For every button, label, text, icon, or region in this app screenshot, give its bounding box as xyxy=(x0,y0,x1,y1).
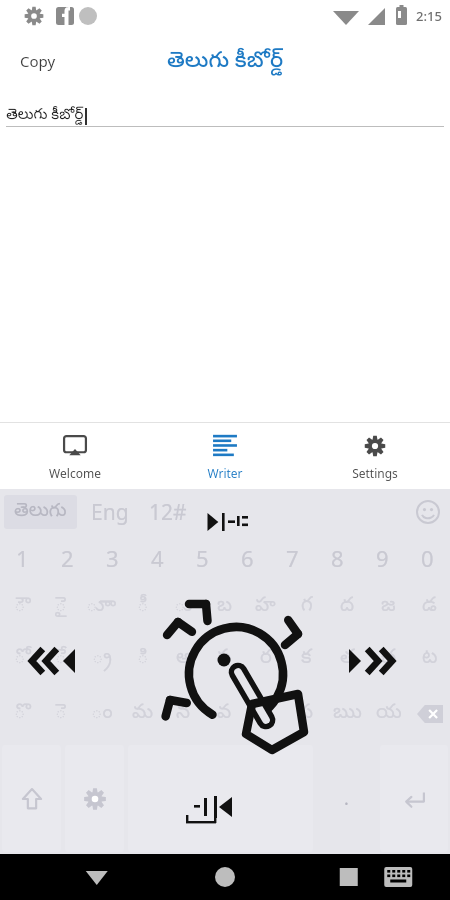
staticText: తెలుగు కీబోర్డ్ xyxy=(167,43,284,77)
button[interactable]: బ xyxy=(204,581,245,633)
button[interactable]: 12# xyxy=(143,494,193,531)
button[interactable]: చ xyxy=(368,633,409,685)
staticText: 0 xyxy=(421,543,434,573)
button[interactable]: ర xyxy=(245,633,286,685)
staticText: గ xyxy=(301,594,313,621)
button[interactable]: వ xyxy=(204,685,245,743)
button[interactable]: ూా xyxy=(81,581,122,633)
button[interactable]: 3 xyxy=(90,535,135,581)
button[interactable]: ట xyxy=(409,633,450,685)
button[interactable]: ో xyxy=(0,633,40,685)
staticText: ు xyxy=(174,594,193,621)
staticText: ఋ xyxy=(333,701,362,728)
button[interactable]: Space xyxy=(128,745,313,852)
button[interactable]: Emoji xyxy=(406,490,450,534)
staticText: చ xyxy=(381,646,397,673)
button[interactable]: 8 xyxy=(315,535,360,581)
button[interactable]: Welcome xyxy=(0,423,150,489)
button[interactable]: Copy xyxy=(8,43,68,79)
button[interactable]: 7 xyxy=(270,535,315,581)
button[interactable]: మ xyxy=(122,685,163,743)
staticText: 5 xyxy=(196,543,209,573)
button[interactable]: Backspace xyxy=(409,685,450,743)
button[interactable]: 2 xyxy=(45,535,90,581)
staticText: ై xyxy=(55,594,67,621)
staticText: ో xyxy=(14,646,26,673)
button[interactable]: Eng xyxy=(77,494,143,531)
staticText: డ xyxy=(422,594,437,621)
staticText: తెలుగు xyxy=(14,499,67,525)
button[interactable]: ల xyxy=(245,685,286,743)
button[interactable]: తెలుగు xyxy=(4,495,77,529)
staticText: ె xyxy=(55,701,67,728)
button[interactable]: Writer xyxy=(150,423,300,489)
button[interactable]: డ xyxy=(409,581,450,633)
staticText: ం xyxy=(91,701,113,728)
staticText: Eng xyxy=(91,498,129,527)
button[interactable]: ్ర xyxy=(81,633,122,685)
button[interactable]: ై xyxy=(40,581,81,633)
staticText: త xyxy=(340,646,356,673)
staticText: క xyxy=(301,646,312,673)
staticText: ర xyxy=(260,646,272,673)
button[interactable]: 4 xyxy=(135,535,180,581)
staticText: హ xyxy=(255,594,276,621)
staticText: అ xyxy=(176,646,192,673)
staticText: 12# xyxy=(149,498,187,527)
button[interactable]: Keyboard settings xyxy=(65,745,124,852)
staticText: ప xyxy=(217,646,232,673)
staticText: తెలుగు కీబోర్డ్ xyxy=(6,103,84,126)
staticText: జ xyxy=(381,594,396,621)
staticText: 7 xyxy=(286,543,299,573)
button[interactable]: Settings xyxy=(300,423,450,489)
staticText: 1 xyxy=(16,543,29,573)
button[interactable]: జ xyxy=(368,581,409,633)
staticText: స xyxy=(299,701,314,728)
button[interactable]: గ xyxy=(286,581,327,633)
button[interactable]: స xyxy=(286,685,327,743)
staticText: వ xyxy=(217,701,232,728)
staticText: 6 xyxy=(241,543,254,573)
button[interactable]: ే xyxy=(40,633,81,685)
button[interactable]: ు xyxy=(163,581,204,633)
button[interactable]: 1 xyxy=(0,535,45,581)
staticText: మ xyxy=(132,701,154,728)
staticText: ొ xyxy=(14,701,26,728)
button[interactable]: న xyxy=(163,685,204,743)
button[interactable]: 0 xyxy=(405,535,450,581)
staticText: 2:15 xyxy=(416,7,442,25)
button[interactable]: హ xyxy=(245,581,286,633)
button[interactable]: క xyxy=(286,633,327,685)
button[interactable]: 5 xyxy=(180,535,225,581)
staticText: ి xyxy=(137,646,149,673)
button[interactable]: 9 xyxy=(360,535,405,581)
staticText: య xyxy=(376,701,402,728)
staticText: న xyxy=(176,701,191,728)
button[interactable]: య xyxy=(368,685,409,743)
button[interactable]: ద xyxy=(327,581,368,633)
staticText: 9 xyxy=(376,543,389,573)
staticText: 8 xyxy=(331,543,344,573)
staticText: ట xyxy=(422,646,438,673)
button[interactable]: ప xyxy=(204,633,245,685)
staticText: 4 xyxy=(151,543,164,573)
staticText: బ xyxy=(217,594,232,621)
button[interactable]: అ xyxy=(163,633,204,685)
button[interactable]: ౌ xyxy=(0,581,40,633)
staticText: . xyxy=(344,786,349,811)
staticText: ీ xyxy=(137,594,149,621)
button[interactable]: ఋ xyxy=(327,685,368,743)
staticText: ల xyxy=(258,701,273,728)
button[interactable]: త xyxy=(327,633,368,685)
button[interactable]: Enter xyxy=(380,745,448,852)
button[interactable]: 6 xyxy=(225,535,270,581)
staticText: Settings xyxy=(352,465,398,481)
button[interactable]: Shift xyxy=(2,745,61,852)
staticText: 2 xyxy=(61,543,74,573)
